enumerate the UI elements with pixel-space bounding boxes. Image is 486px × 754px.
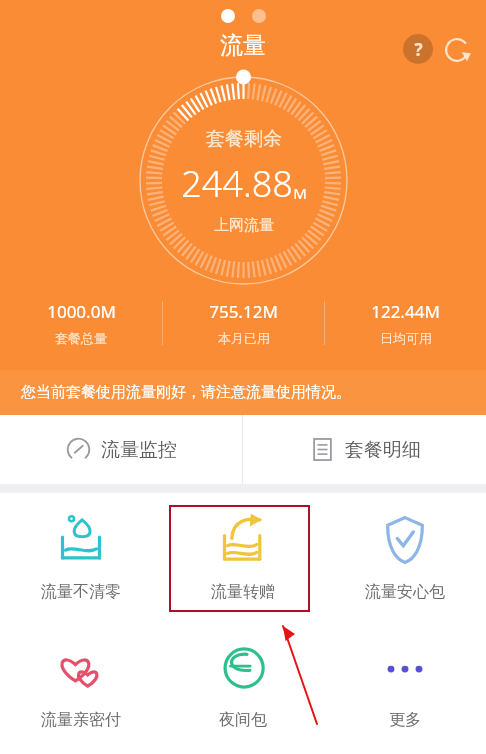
staticText: ?	[414, 38, 423, 61]
button[interactable]: 流量不清零	[0, 493, 162, 621]
button[interactable]: 您当前套餐使用流量刚好，请注意流量使用情况。	[0, 370, 486, 415]
staticText: 流量监控	[101, 438, 177, 462]
staticText: 套餐总量	[55, 330, 107, 346]
staticText: 您当前套餐使用流量刚好，请注意流量使用情况。	[21, 383, 351, 402]
staticText: 1000.0M	[47, 300, 116, 323]
staticText: 上网流量	[214, 216, 274, 235]
staticText: 日均可用	[380, 330, 432, 346]
staticText: 755.12M	[209, 300, 278, 323]
staticText: 122.44M	[371, 300, 440, 323]
staticText: 流量不清零	[41, 582, 121, 602]
staticText: 套餐剩余	[206, 127, 282, 151]
staticText: 流量亲密付	[41, 710, 121, 730]
staticText: M	[293, 183, 307, 203]
staticText: 更多	[389, 710, 421, 730]
staticText: 套餐明细	[345, 438, 421, 462]
button[interactable]: 流量亲密付	[0, 621, 162, 749]
staticText: 夜间包	[219, 710, 267, 730]
staticText: 流量	[220, 31, 266, 60]
staticText: 流量安心包	[365, 582, 445, 602]
button[interactable]: 755.12M	[163, 296, 324, 350]
button[interactable]: 122.44M	[325, 296, 486, 350]
staticText: 流量转赠	[211, 582, 275, 602]
button[interactable]: 流量监控	[0, 415, 242, 484]
staticText: 本月已用	[218, 330, 270, 346]
staticText: 244.88	[181, 159, 293, 208]
button[interactable]: 更多	[324, 621, 486, 749]
button[interactable]: 1000.0M	[0, 296, 162, 350]
button[interactable]: 套餐明细	[243, 415, 486, 484]
button[interactable]: 流量转赠	[162, 493, 324, 621]
button[interactable]: Help	[403, 34, 433, 64]
button[interactable]: 夜间包	[162, 621, 324, 749]
button[interactable]: 流量安心包	[324, 493, 486, 621]
button[interactable]: Refresh	[440, 33, 474, 67]
